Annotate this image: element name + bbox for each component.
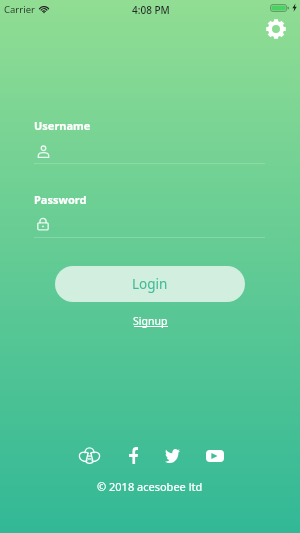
- staticText: Password: [34, 192, 87, 207]
- staticText: Username: [34, 118, 91, 133]
- button[interactable]: Facebook: [129, 447, 138, 464]
- button[interactable]: Acesobee: [79, 446, 100, 464]
- staticText: Carrier: [4, 3, 35, 16]
- staticText: Signup: [133, 314, 168, 328]
- button[interactable]: Signup: [131, 313, 170, 329]
- button[interactable]: Login: [55, 266, 245, 302]
- staticText: 4:08 PM: [132, 3, 170, 17]
- button[interactable]: Settings: [266, 19, 286, 39]
- button[interactable]: Twitter: [165, 449, 180, 463]
- staticText: Login: [132, 275, 168, 293]
- staticText: © 2018 acesobee ltd: [97, 479, 203, 494]
- button[interactable]: YouTube: [206, 450, 224, 462]
